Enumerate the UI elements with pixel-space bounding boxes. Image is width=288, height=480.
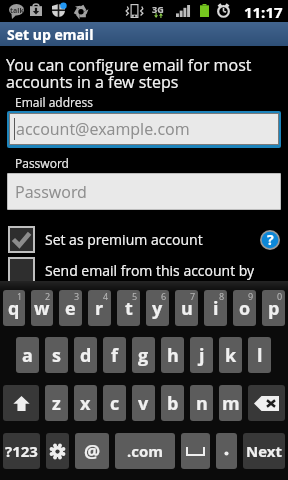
staticText: c xyxy=(110,391,120,416)
staticText: n xyxy=(196,391,208,416)
button[interactable]: s xyxy=(45,337,68,373)
button[interactable]: Period xyxy=(216,433,237,469)
staticText: 6 xyxy=(161,290,167,302)
button[interactable]: t xyxy=(117,290,140,326)
button[interactable]: v xyxy=(132,385,155,421)
button[interactable]: .com xyxy=(115,433,175,469)
button[interactable]: j xyxy=(190,337,213,373)
staticText: Set as premium account xyxy=(45,230,203,249)
button[interactable]: w xyxy=(31,290,53,326)
button[interactable]: account@example.com xyxy=(10,114,278,144)
staticText: talk xyxy=(10,6,24,16)
button[interactable]: Password xyxy=(8,174,280,209)
staticText: 7 xyxy=(190,290,196,302)
button[interactable]: l xyxy=(248,337,271,373)
staticText: .com xyxy=(127,441,164,461)
staticText: Email address xyxy=(15,94,93,110)
staticText: 2 xyxy=(45,290,51,302)
staticText: @ xyxy=(84,439,101,464)
staticText: g xyxy=(138,343,149,368)
staticText: 9 xyxy=(248,290,254,302)
button[interactable]: k xyxy=(219,337,242,373)
button[interactable]: ?123 xyxy=(3,433,40,469)
staticText: p xyxy=(268,296,280,321)
button[interactable]: m xyxy=(219,385,242,421)
staticText: 3G xyxy=(152,3,164,15)
staticText: ?123 xyxy=(5,441,38,461)
staticText: You can configure email for most account… xyxy=(6,54,266,93)
button[interactable]: Send email from this account by xyxy=(0,255,288,286)
button[interactable]: i xyxy=(204,290,227,326)
button[interactable]: e xyxy=(59,290,82,326)
staticText: account@example.com xyxy=(16,118,190,140)
staticText: f xyxy=(111,343,118,368)
staticText: ? xyxy=(267,230,274,249)
staticText: Send email from this account by xyxy=(45,261,255,280)
staticText: e xyxy=(65,296,76,321)
button[interactable]: g xyxy=(132,337,155,373)
button[interactable]: a xyxy=(16,337,39,373)
staticText: 0 xyxy=(277,290,283,302)
staticText: Password xyxy=(15,155,69,171)
button[interactable]: p xyxy=(262,290,285,326)
staticText: h xyxy=(167,343,179,368)
button[interactable]: h xyxy=(161,337,184,373)
button[interactable]: u xyxy=(175,290,198,326)
staticText: i xyxy=(213,296,219,321)
button[interactable]: f xyxy=(103,337,126,373)
button[interactable]: r xyxy=(88,290,111,326)
button[interactable]: d xyxy=(74,337,97,373)
staticText: 1 xyxy=(17,290,23,302)
button[interactable]: Next xyxy=(243,433,285,469)
staticText: m xyxy=(222,391,240,416)
button[interactable]: z xyxy=(45,385,68,421)
staticText: 4 xyxy=(103,290,109,302)
staticText: j xyxy=(199,343,205,368)
button[interactable]: x xyxy=(74,385,97,421)
staticText: 3 xyxy=(74,290,80,302)
staticText: s xyxy=(52,343,61,368)
button[interactable]: y xyxy=(146,290,169,326)
button[interactable]: Backspace xyxy=(248,385,285,421)
button[interactable]: Set as premium account xyxy=(0,224,288,255)
staticText: b xyxy=(167,391,179,416)
button[interactable]: @ xyxy=(75,433,109,469)
staticText: r xyxy=(95,296,104,321)
staticText: v xyxy=(138,391,149,416)
button[interactable]: q xyxy=(3,290,25,326)
staticText: q xyxy=(8,296,20,321)
button[interactable]: Help xyxy=(260,230,280,250)
staticText: d xyxy=(80,343,92,368)
staticText: x xyxy=(80,391,91,416)
staticText: l xyxy=(257,343,263,368)
staticText: u xyxy=(181,296,193,321)
staticText: t xyxy=(125,296,133,321)
staticText: z xyxy=(52,391,61,416)
staticText: 11:17 xyxy=(244,2,283,22)
staticText: 8 xyxy=(219,290,225,302)
button[interactable]: Space xyxy=(181,433,210,469)
button[interactable]: n xyxy=(190,385,213,421)
button[interactable]: o xyxy=(233,290,256,326)
staticText: w xyxy=(34,296,50,321)
staticText: a xyxy=(22,343,33,368)
staticText: y xyxy=(152,296,163,321)
button[interactable]: Shift xyxy=(3,385,39,421)
staticText: Set up email xyxy=(7,25,94,44)
button[interactable]: c xyxy=(103,385,126,421)
staticText: k xyxy=(225,343,237,368)
button[interactable]: b xyxy=(161,385,184,421)
staticText: Password xyxy=(15,181,87,203)
staticText: 5 xyxy=(132,290,138,302)
button[interactable]: Settings xyxy=(46,433,69,469)
staticText: Next xyxy=(246,441,282,461)
staticText: o xyxy=(239,296,251,321)
